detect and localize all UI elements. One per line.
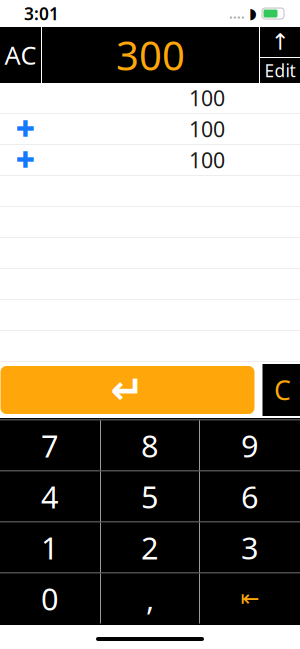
- staticText: 3: [241, 527, 259, 568]
- staticText: ◗: [249, 5, 257, 22]
- staticText: 9: [241, 425, 259, 466]
- staticText: ....: [229, 5, 245, 22]
- button[interactable]: 5: [101, 471, 199, 521]
- staticText: ↵: [110, 367, 144, 413]
- button[interactable]: Enter: [0, 366, 254, 414]
- staticText: 100: [189, 115, 225, 143]
- staticText: 100: [189, 84, 225, 112]
- button[interactable]: C: [262, 364, 300, 416]
- staticText: 100: [189, 146, 225, 174]
- staticText: AC: [4, 38, 36, 72]
- button[interactable]: Backspace: [200, 573, 300, 623]
- staticText: 7: [41, 425, 59, 466]
- staticText: 6: [241, 476, 259, 517]
- staticText: ↑: [270, 29, 289, 55]
- button[interactable]: ✚: [0, 114, 300, 145]
- button[interactable]: 6: [200, 471, 300, 521]
- button[interactable]: 2: [101, 522, 199, 572]
- button[interactable]: Edit: [260, 58, 300, 83]
- staticText: 4: [41, 476, 59, 517]
- button[interactable]: 3: [200, 522, 300, 572]
- button[interactable]: ,: [101, 573, 199, 623]
- button[interactable]: ✚: [0, 145, 300, 176]
- button[interactable]: 7: [0, 420, 100, 470]
- button[interactable]: 0: [0, 573, 100, 623]
- button[interactable]: 300: [42, 27, 259, 83]
- staticText: 5: [141, 476, 159, 517]
- staticText: 2: [141, 527, 159, 568]
- staticText: 0: [41, 578, 59, 619]
- staticText: 8: [141, 425, 159, 466]
- staticText: ✚: [16, 147, 35, 173]
- button[interactable]: 4: [0, 471, 100, 521]
- button[interactable]: 100: [0, 83, 300, 114]
- staticText: ✚: [16, 116, 35, 142]
- button[interactable]: 9: [200, 420, 300, 470]
- staticText: ,: [146, 578, 154, 619]
- button[interactable]: 1: [0, 522, 100, 572]
- button[interactable]: Send: [260, 27, 300, 57]
- staticText: C: [274, 372, 291, 408]
- staticText: Edit: [264, 59, 295, 82]
- button[interactable]: 8: [101, 420, 199, 470]
- staticText: 1: [41, 527, 59, 568]
- button[interactable]: AC: [0, 27, 41, 83]
- staticText: 3:01: [24, 2, 59, 25]
- staticText: ⇤: [240, 586, 259, 611]
- staticText: 300: [116, 28, 185, 81]
